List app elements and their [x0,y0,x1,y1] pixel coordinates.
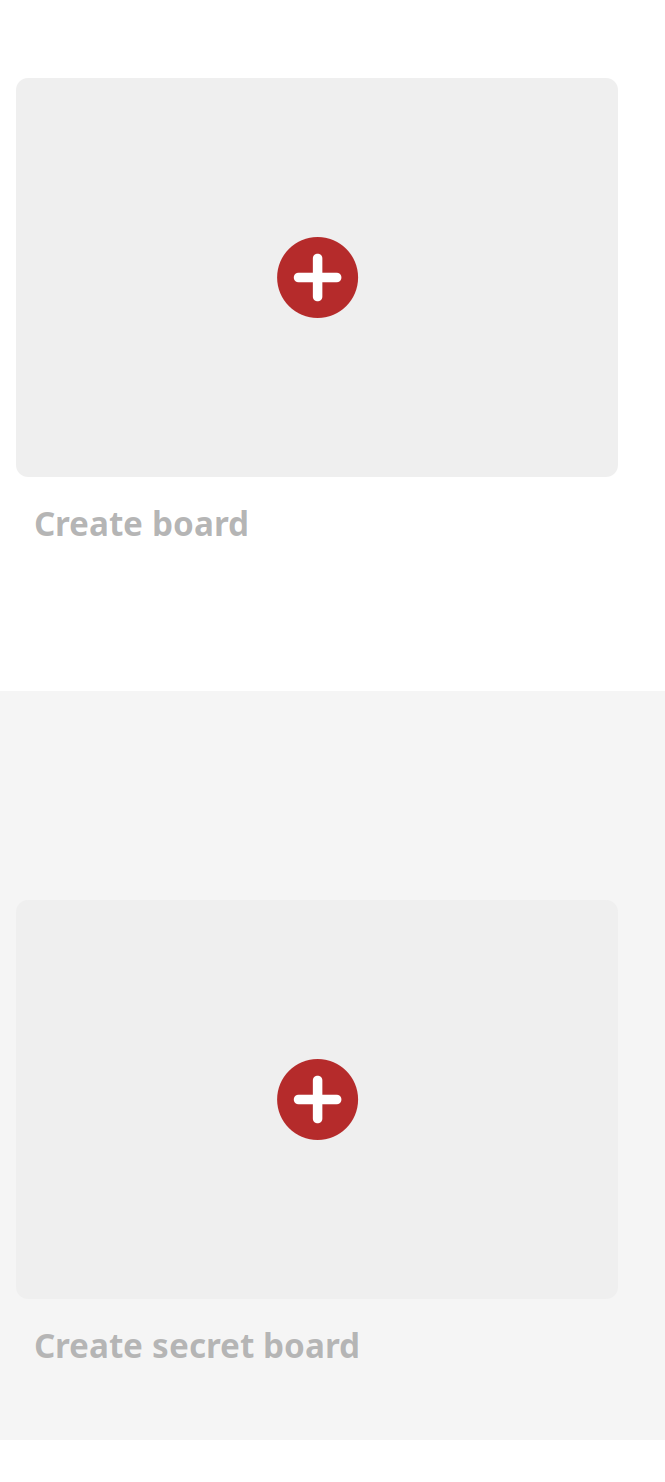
button[interactable]: Create secret board [16,900,618,1367]
button[interactable]: Create board [16,78,618,545]
staticText: Create board [34,501,249,545]
staticText: Create secret board [34,1323,360,1367]
